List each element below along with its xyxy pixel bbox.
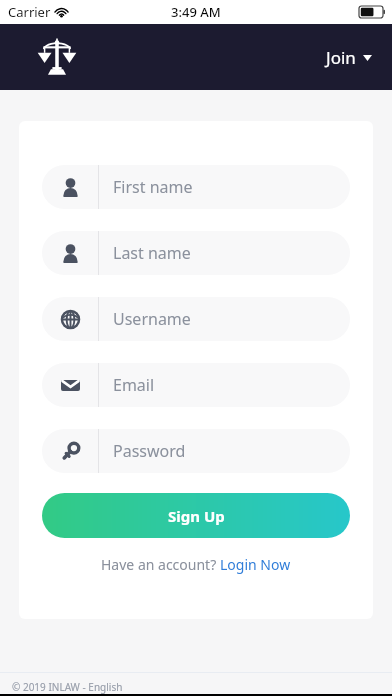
staticText: © 2019 INLAW - English (12, 680, 123, 694)
button[interactable]: Password (42, 429, 350, 473)
staticText: Username (113, 308, 191, 330)
staticText: Password (113, 440, 186, 462)
staticText: First name (113, 176, 193, 198)
staticText: Email (113, 374, 155, 396)
staticText: Carrier (8, 3, 51, 21)
button[interactable]: Email (42, 363, 350, 407)
button[interactable]: Login Now (220, 555, 291, 574)
button[interactable]: Username (42, 297, 350, 341)
button[interactable]: Home (36, 36, 78, 78)
staticText: Sign Up (168, 506, 225, 526)
button[interactable]: Join (320, 40, 378, 75)
staticText: Join (326, 46, 356, 69)
staticText: Have an account? (101, 555, 220, 574)
staticText: 3:49 AM (171, 3, 221, 21)
button[interactable]: Sign Up (42, 493, 350, 538)
staticText: Last name (113, 242, 191, 264)
button[interactable]: Last name (42, 231, 350, 275)
button[interactable]: First name (42, 165, 350, 209)
